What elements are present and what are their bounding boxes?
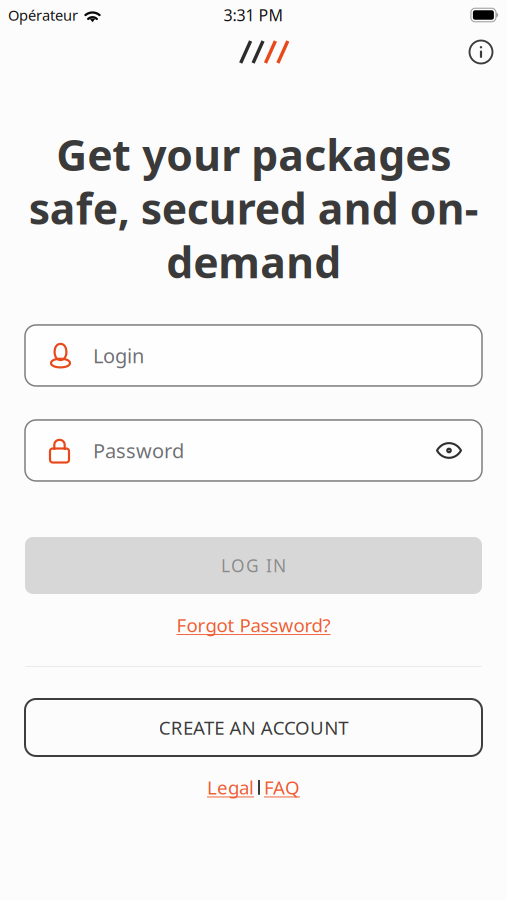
button[interactable]: Show password [436, 441, 462, 459]
staticText: Password [93, 437, 184, 464]
button[interactable]: FAQ [264, 775, 300, 800]
staticText: FAQ [264, 775, 300, 800]
staticText: CREATE AN ACCOUNT [159, 715, 348, 740]
button[interactable]: CREATE AN ACCOUNT [25, 699, 482, 756]
button[interactable]: Legal [207, 775, 254, 800]
button[interactable]: Information [466, 37, 496, 67]
staticText: Get your packages safe, secured and on- … [28, 126, 478, 290]
button[interactable]: LOG IN [25, 537, 482, 594]
staticText: Opérateur [8, 5, 78, 25]
button[interactable]: Login [25, 325, 482, 386]
staticText: LOG IN [221, 554, 286, 577]
staticText: Login [93, 342, 144, 369]
button[interactable]: Password [25, 420, 482, 481]
staticText: 3:31 PM [223, 4, 283, 26]
staticText: Legal [207, 775, 254, 800]
staticText: Forgot Password? [176, 613, 330, 637]
button[interactable]: Forgot Password? [176, 610, 330, 640]
